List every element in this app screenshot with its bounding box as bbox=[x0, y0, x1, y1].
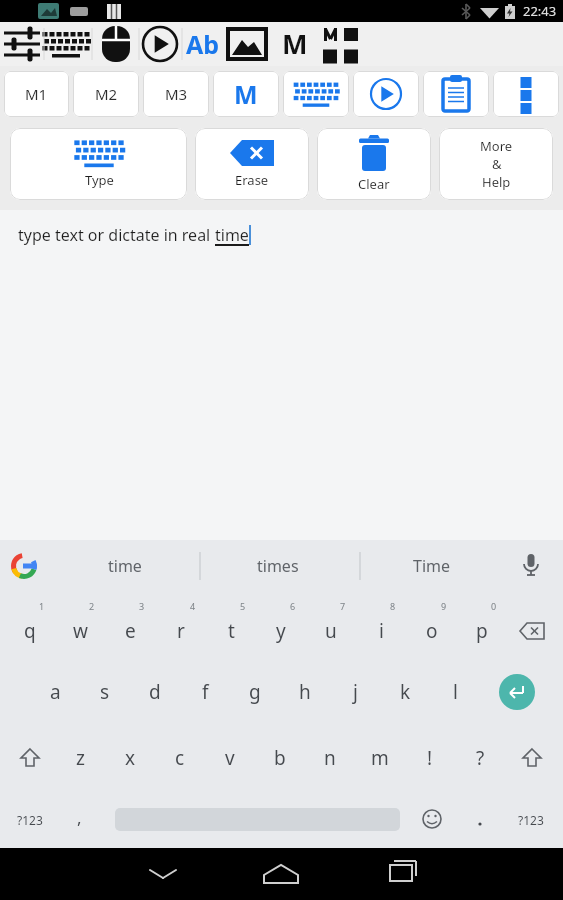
button[interactable]: o bbox=[410, 609, 454, 653]
button[interactable] bbox=[493, 71, 559, 117]
button[interactable]: h bbox=[283, 670, 327, 714]
button[interactable] bbox=[120, 848, 227, 900]
staticText: a bbox=[50, 679, 61, 705]
staticText: z bbox=[76, 745, 85, 771]
staticText: 1 bbox=[39, 600, 45, 612]
button[interactable]: M3 bbox=[143, 71, 209, 117]
button[interactable]: Erase bbox=[195, 128, 309, 200]
button[interactable] bbox=[142, 22, 213, 66]
button[interactable]: j bbox=[333, 670, 377, 714]
button[interactable] bbox=[353, 71, 419, 117]
staticText: u bbox=[325, 618, 337, 644]
button[interactable] bbox=[353, 22, 423, 66]
button[interactable]: x bbox=[108, 736, 152, 780]
button[interactable] bbox=[510, 736, 554, 780]
button[interactable] bbox=[423, 71, 489, 117]
button[interactable]: q bbox=[8, 609, 52, 653]
staticText: ? bbox=[476, 745, 485, 771]
staticText: 5 bbox=[240, 600, 246, 612]
button[interactable] bbox=[213, 22, 283, 66]
staticText: ?123 bbox=[17, 812, 43, 828]
staticText: ?123 bbox=[518, 812, 544, 828]
button[interactable]: t bbox=[209, 609, 253, 653]
button[interactable] bbox=[93, 788, 187, 848]
button[interactable]: y bbox=[259, 609, 303, 653]
button[interactable] bbox=[510, 609, 554, 653]
button[interactable] bbox=[8, 736, 52, 780]
button[interactable] bbox=[281, 788, 375, 848]
staticText: 8 bbox=[390, 600, 396, 612]
staticText: type text or dictate in real bbox=[18, 224, 215, 246]
button[interactable]: b bbox=[258, 736, 302, 780]
staticText: Help bbox=[482, 173, 511, 191]
staticText: Clear bbox=[358, 175, 390, 193]
button[interactable] bbox=[71, 22, 142, 66]
button[interactable]: m bbox=[358, 736, 402, 780]
staticText: 3 bbox=[139, 600, 145, 612]
staticText: c bbox=[175, 745, 185, 771]
button[interactable]: ! bbox=[408, 736, 452, 780]
staticText: Erase bbox=[235, 171, 269, 189]
button[interactable]: Type bbox=[10, 128, 187, 200]
staticText: r bbox=[177, 618, 185, 644]
staticText: v bbox=[225, 745, 235, 771]
staticText: d bbox=[149, 679, 161, 705]
button[interactable]: f bbox=[183, 670, 227, 714]
button[interactable]: s bbox=[83, 670, 127, 714]
button[interactable]: n bbox=[308, 736, 352, 780]
staticText: M bbox=[282, 25, 308, 62]
staticText: Time bbox=[413, 555, 451, 577]
button[interactable] bbox=[0, 788, 93, 848]
staticText: 22:43 bbox=[523, 2, 557, 20]
button[interactable]: l bbox=[433, 670, 477, 714]
button[interactable] bbox=[283, 71, 349, 117]
button[interactable]: v bbox=[208, 736, 252, 780]
staticText: t bbox=[228, 618, 235, 644]
button[interactable] bbox=[0, 22, 71, 66]
staticText: 9 bbox=[441, 600, 447, 612]
button[interactable]: M bbox=[213, 71, 279, 117]
staticText: g bbox=[249, 679, 261, 705]
button[interactable]: u bbox=[309, 609, 353, 653]
button[interactable]: w bbox=[58, 609, 102, 653]
button[interactable] bbox=[0, 540, 187, 592]
button[interactable] bbox=[335, 848, 443, 900]
button[interactable]: k bbox=[383, 670, 427, 714]
staticText: ! bbox=[427, 745, 433, 771]
staticText: 4 bbox=[190, 600, 196, 612]
button[interactable] bbox=[227, 848, 335, 900]
button[interactable]: z bbox=[58, 736, 102, 780]
button[interactable]: ? bbox=[458, 736, 502, 780]
button[interactable]: r bbox=[159, 609, 203, 653]
button[interactable] bbox=[187, 788, 281, 848]
button[interactable]: d bbox=[133, 670, 177, 714]
button[interactable]: g bbox=[233, 670, 277, 714]
staticText: 6 bbox=[290, 600, 296, 612]
button[interactable] bbox=[283, 22, 353, 66]
staticText: h bbox=[299, 679, 311, 705]
staticText: M2 bbox=[95, 84, 118, 104]
button[interactable]: More bbox=[439, 128, 553, 200]
button[interactable] bbox=[375, 540, 563, 592]
button[interactable] bbox=[499, 674, 535, 710]
staticText: M1 bbox=[25, 84, 48, 104]
button[interactable]: Clear bbox=[317, 128, 431, 200]
button[interactable] bbox=[375, 788, 469, 848]
staticText: time bbox=[215, 224, 249, 246]
button[interactable]: i bbox=[359, 609, 403, 653]
button[interactable] bbox=[187, 540, 375, 592]
staticText: s bbox=[100, 679, 110, 705]
button[interactable] bbox=[469, 788, 563, 848]
button[interactable]: M1 bbox=[4, 71, 69, 117]
staticText: , bbox=[77, 806, 82, 829]
staticText: b bbox=[274, 745, 286, 771]
button[interactable]: M2 bbox=[73, 71, 139, 117]
button[interactable]: e bbox=[108, 609, 152, 653]
staticText: k bbox=[400, 679, 411, 705]
button[interactable]: a bbox=[33, 670, 77, 714]
button[interactable]: c bbox=[158, 736, 202, 780]
button[interactable]: p bbox=[460, 609, 504, 653]
